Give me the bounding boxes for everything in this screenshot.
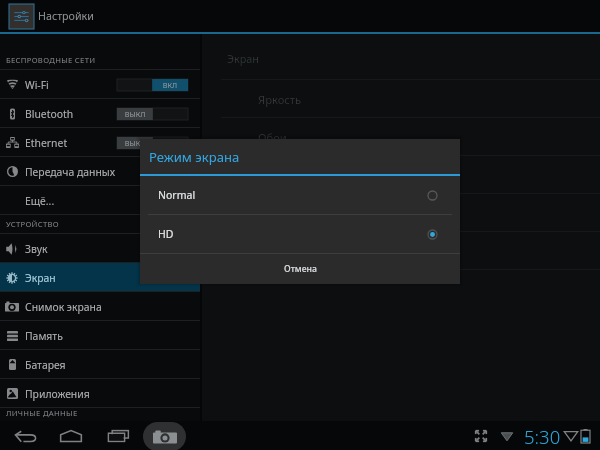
button[interactable]: Normal	[140, 176, 460, 214]
button[interactable]: Передача данных	[0, 157, 200, 186]
staticText: ВКЛ	[152, 80, 188, 90]
staticText: ВЫКЛ	[117, 138, 153, 148]
button[interactable]: Screenshot	[143, 422, 186, 450]
button[interactable]: Приложения	[0, 379, 200, 408]
staticText: Ещё...	[25, 194, 55, 208]
button[interactable]	[202, 232, 600, 270]
staticText: Яркость	[258, 92, 302, 107]
staticText: Память	[25, 329, 63, 343]
staticText: Wi-Fi	[25, 78, 49, 92]
button[interactable]: Recents	[103, 421, 134, 450]
staticText: HD	[158, 227, 174, 241]
button[interactable]	[202, 156, 600, 194]
button[interactable]: Ethernet	[0, 128, 200, 157]
staticText: Звук	[25, 242, 48, 256]
staticText: БЕСПРОВОДНЫЕ СЕТИ	[6, 55, 96, 65]
button[interactable]: Яркость	[202, 80, 600, 118]
button[interactable]: Home	[55, 421, 86, 450]
staticText: Экран	[227, 51, 259, 66]
staticText: Normal	[158, 188, 196, 202]
staticText: Отмена	[284, 263, 317, 275]
staticText: Приложения	[25, 387, 90, 401]
staticText: Режим экрана	[149, 148, 240, 166]
button[interactable]: Батарея	[0, 350, 200, 379]
staticText: Ethernet	[25, 136, 68, 150]
staticText: УСТРОЙСТВО	[6, 219, 59, 229]
staticText: ЛИЧНЫЕ ДАННЫЕ	[6, 408, 78, 418]
button[interactable]: Экран	[0, 263, 200, 292]
staticText: Снимок экрана	[25, 300, 102, 314]
staticText: Батарея	[25, 358, 66, 372]
staticText: 5:30	[524, 424, 561, 449]
button[interactable]: Звук	[0, 234, 200, 263]
button[interactable]: Память	[0, 321, 200, 350]
button[interactable]: HD	[140, 215, 460, 253]
staticText: Экран	[25, 271, 56, 285]
button[interactable]	[202, 194, 600, 232]
button[interactable]: Back	[10, 421, 41, 450]
button[interactable]: Fullscreen	[474, 421, 487, 450]
staticText: ВЫКЛ	[117, 109, 153, 119]
button[interactable]: Ещё...	[0, 186, 200, 215]
button[interactable]: Wi-Fi	[0, 70, 200, 99]
staticText: Bluetooth	[25, 107, 74, 121]
staticText: Обои	[258, 130, 287, 145]
button[interactable]: Settings	[9, 4, 34, 29]
staticText: Настройки	[38, 9, 94, 24]
button[interactable]: Bluetooth	[0, 99, 200, 128]
button[interactable]: Снимок экрана	[0, 292, 200, 321]
button[interactable]: Обои	[202, 118, 600, 156]
staticText: Передача данных	[25, 165, 116, 179]
button[interactable]: Отмена	[140, 254, 460, 284]
